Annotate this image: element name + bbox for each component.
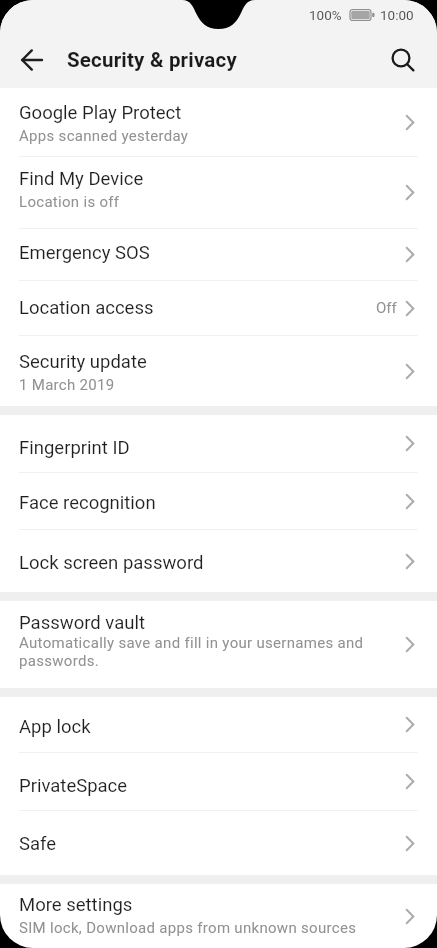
staticText: Security & privacy (67, 48, 237, 72)
button[interactable]: Emergency SOS (0, 229, 437, 280)
button[interactable]: PrivateSpace (0, 753, 437, 810)
button[interactable]: App lock (0, 697, 437, 752)
button[interactable]: Find My Device (0, 157, 437, 228)
button[interactable] (381, 32, 425, 88)
button[interactable]: Safe (0, 811, 437, 875)
staticText: 10:00 (380, 7, 414, 23)
staticText: Face recognition (19, 492, 156, 514)
button[interactable]: Fingerprint ID (0, 415, 437, 472)
staticText: 100% (309, 7, 342, 23)
staticText: Safe (19, 833, 57, 855)
staticText: Fingerprint ID (19, 437, 130, 459)
staticText: Google Play Protect (19, 102, 182, 124)
staticText: Lock screen password (19, 552, 204, 574)
staticText: Find My Device (19, 168, 144, 190)
staticText: Apps scanned yesterday (19, 127, 189, 145)
staticText: Off (376, 299, 397, 317)
staticText: Password vault (19, 612, 145, 634)
staticText: Location access (19, 297, 154, 319)
staticText: 1 March 2019 (19, 376, 115, 394)
button[interactable]: Google Play Protect (0, 88, 437, 156)
staticText: PrivateSpace (19, 775, 128, 797)
staticText: Automatically save and fill in your user… (19, 634, 364, 652)
button[interactable]: Security update (0, 336, 437, 406)
staticText: More settings (19, 894, 133, 916)
staticText: Security update (19, 351, 147, 373)
button[interactable]: Password vault (0, 601, 437, 688)
staticText: passwords. (19, 652, 99, 670)
button[interactable]: Lock screen password (0, 530, 437, 592)
button[interactable]: More settings (0, 884, 437, 948)
staticText: Location is off (19, 193, 120, 211)
staticText: App lock (19, 716, 91, 738)
button[interactable] (13, 32, 51, 88)
button[interactable]: Face recognition (0, 473, 437, 529)
staticText: SIM lock, Download apps from unknown sou… (19, 919, 357, 937)
staticText: Emergency SOS (19, 242, 150, 264)
button[interactable]: Location access (0, 281, 437, 335)
